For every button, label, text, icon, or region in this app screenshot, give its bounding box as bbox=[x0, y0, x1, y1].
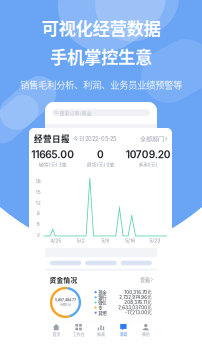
staticText: 2,633,037.00元 bbox=[118, 305, 151, 310]
button[interactable]: 快捷入口 bbox=[50, 261, 81, 265]
staticText: 搜索订单/商品 bbox=[60, 109, 92, 116]
staticText: 5/23 bbox=[149, 237, 160, 244]
staticText: 11665.00 bbox=[31, 148, 74, 161]
staticText: 5,857,494.77 bbox=[55, 298, 76, 302]
staticText: -17,213.00元 bbox=[125, 310, 151, 315]
staticText: 5/9 bbox=[101, 237, 109, 244]
staticText: 报表 bbox=[97, 331, 105, 337]
staticText: 经营日报 bbox=[34, 132, 70, 145]
button[interactable]: 查看 bbox=[140, 276, 152, 283]
button[interactable]: 全部部门 bbox=[140, 134, 167, 143]
staticText: 销售毛利分析、利润、业务员业绩预警等 bbox=[20, 78, 182, 91]
staticText: 余额(元) bbox=[60, 302, 71, 307]
staticText: 15 bbox=[35, 189, 40, 195]
staticText: 全部部门 bbox=[140, 134, 164, 143]
staticText: 其他 bbox=[98, 309, 106, 316]
staticText: 2,732,974.96元 bbox=[119, 295, 151, 300]
staticText: 首页 bbox=[52, 331, 60, 337]
staticText: 6 bbox=[36, 221, 39, 227]
staticText: 工作台 bbox=[73, 331, 85, 337]
staticText: 微信 bbox=[98, 299, 106, 306]
staticText: 银行 bbox=[98, 294, 106, 300]
button[interactable]: 快捷入口 bbox=[121, 261, 152, 265]
button[interactable]: 工作台 bbox=[67, 324, 90, 337]
staticText: 18 bbox=[35, 178, 40, 184]
staticText: 10709.20 bbox=[126, 148, 171, 161]
staticText: 100,316.70元 bbox=[124, 289, 151, 295]
staticText: 可视化经营数据 bbox=[41, 15, 160, 40]
staticText: 208,376.11元 bbox=[124, 300, 151, 305]
staticText: 销货(元) 3笔 bbox=[39, 161, 67, 168]
staticText: 4/25 bbox=[50, 237, 61, 244]
staticText: 我的 bbox=[142, 331, 150, 337]
button[interactable]: 首页 bbox=[45, 324, 67, 337]
staticText: 现金 bbox=[98, 289, 106, 295]
staticText: 9 bbox=[36, 210, 39, 216]
button[interactable]: 报表 bbox=[90, 324, 112, 337]
staticText: 消息 bbox=[119, 331, 127, 337]
staticText: 5/16 bbox=[125, 237, 135, 244]
staticText: 查看 bbox=[140, 276, 150, 283]
button[interactable]: 我的 bbox=[135, 324, 157, 337]
staticText: 5/2 bbox=[76, 237, 84, 244]
staticText: 3 bbox=[36, 231, 39, 238]
button[interactable]: 快捷入口 bbox=[85, 261, 117, 265]
staticText: 0 bbox=[97, 148, 104, 161]
staticText: 退货(元) 0笔 bbox=[86, 161, 114, 168]
staticText: 今日2022-05-25 bbox=[73, 135, 116, 142]
button[interactable]: 消息 bbox=[112, 324, 135, 337]
staticText: 12 bbox=[35, 199, 40, 206]
staticText: 毛利(元) bbox=[139, 161, 158, 168]
staticText: 支付宝 bbox=[98, 304, 109, 311]
staticText: 手机掌控生意 bbox=[50, 44, 152, 69]
staticText: 资金情况 bbox=[49, 275, 77, 284]
